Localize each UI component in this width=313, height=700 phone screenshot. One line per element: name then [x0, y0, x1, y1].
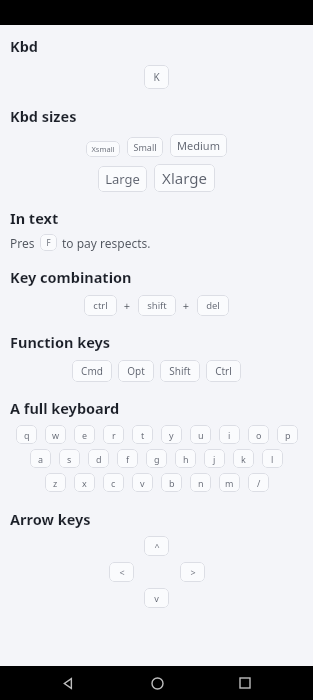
staticText: Cmd	[81, 364, 103, 378]
button[interactable]: Back	[48, 666, 88, 700]
staticText: shift	[147, 299, 167, 312]
button[interactable]: v	[144, 588, 169, 608]
staticText: Function keys	[10, 332, 111, 352]
staticText: f	[126, 453, 130, 465]
staticText: u	[198, 429, 204, 441]
staticText: Xsmall	[91, 144, 115, 154]
button[interactable]: l	[262, 449, 283, 468]
staticText: Key combination	[10, 267, 132, 287]
button[interactable]: e	[74, 425, 95, 444]
staticText: >	[190, 566, 196, 578]
staticText: h	[183, 453, 189, 465]
staticText: l	[271, 453, 274, 465]
button[interactable]: m	[219, 473, 240, 492]
button[interactable]: u	[190, 425, 211, 444]
button[interactable]: Cmd	[72, 360, 112, 382]
button[interactable]: shift	[138, 295, 176, 316]
staticText: m	[225, 477, 234, 489]
staticText: Kbd	[10, 36, 38, 56]
staticText: ctrl	[93, 299, 108, 312]
staticText: g	[154, 453, 160, 465]
staticText: Pres	[10, 235, 35, 251]
button[interactable]: ^	[144, 536, 169, 556]
button[interactable]: a	[30, 449, 51, 468]
button[interactable]: s	[59, 449, 80, 468]
staticText: ^	[154, 540, 160, 552]
staticText: Shift	[169, 364, 191, 378]
staticText: del	[206, 299, 220, 312]
button[interactable]: z	[45, 473, 66, 492]
button[interactable]: x	[74, 473, 95, 492]
staticText: Large	[105, 170, 140, 188]
button[interactable]: K	[144, 65, 169, 89]
staticText: to pay respects.	[62, 235, 151, 251]
button[interactable]: r	[103, 425, 124, 444]
staticText: v	[140, 477, 145, 489]
staticText: v	[154, 592, 159, 604]
staticText: Arrow keys	[10, 509, 91, 529]
staticText: k	[241, 453, 246, 465]
button[interactable]: w	[45, 425, 66, 444]
button[interactable]: Recents	[225, 666, 265, 700]
button[interactable]: Shift	[160, 360, 200, 382]
staticText: z	[53, 477, 58, 489]
staticText: y	[169, 429, 174, 441]
staticText: c	[111, 477, 116, 489]
button[interactable]: v	[132, 473, 153, 492]
staticText: Kbd sizes	[10, 106, 77, 126]
button[interactable]: Ctrl	[206, 360, 241, 382]
staticText: Ctrl	[215, 364, 232, 378]
button[interactable]: Xlarge	[154, 164, 215, 192]
staticText: s	[67, 453, 72, 465]
button[interactable]: Medium	[170, 134, 227, 157]
button[interactable]: n	[190, 473, 211, 492]
button[interactable]: Large	[98, 166, 147, 192]
button[interactable]: o	[248, 425, 269, 444]
staticText: x	[82, 477, 87, 489]
staticText: q	[24, 429, 30, 441]
staticText: i	[228, 429, 231, 441]
button[interactable]: p	[277, 425, 298, 444]
staticText: n	[198, 477, 204, 489]
staticText: F	[46, 237, 51, 248]
button[interactable]: Small	[127, 137, 163, 157]
button[interactable]: c	[103, 473, 124, 492]
staticText: Medium	[177, 138, 220, 153]
button[interactable]: t	[132, 425, 153, 444]
staticText: o	[256, 429, 262, 441]
button[interactable]: d	[88, 449, 109, 468]
staticText: K	[153, 70, 160, 84]
button[interactable]: Home	[137, 666, 177, 700]
button[interactable]: y	[161, 425, 182, 444]
staticText: r	[112, 429, 116, 441]
button[interactable]: Opt	[118, 360, 154, 382]
button[interactable]: <	[109, 562, 134, 582]
button[interactable]: F	[40, 234, 57, 251]
staticText: p	[285, 429, 291, 441]
button[interactable]: del	[197, 295, 229, 316]
button[interactable]: f	[117, 449, 138, 468]
staticText: Xlarge	[162, 168, 207, 188]
staticText: +	[180, 298, 193, 313]
button[interactable]: q	[16, 425, 37, 444]
button[interactable]: k	[233, 449, 254, 468]
staticText: In text	[10, 208, 59, 228]
staticText: w	[52, 429, 60, 441]
staticText: a	[38, 453, 44, 465]
staticText: /	[257, 477, 261, 489]
button[interactable]: /	[248, 473, 269, 492]
staticText: b	[169, 477, 175, 489]
button[interactable]: h	[175, 449, 196, 468]
button[interactable]: >	[180, 562, 205, 582]
staticText: Small	[133, 141, 157, 153]
staticText: Opt	[127, 364, 145, 378]
staticText: <	[119, 566, 125, 578]
staticText: d	[96, 453, 102, 465]
button[interactable]: g	[146, 449, 167, 468]
button[interactable]: ctrl	[84, 295, 117, 316]
button[interactable]: i	[219, 425, 240, 444]
button[interactable]: j	[204, 449, 225, 468]
button[interactable]: Xsmall	[86, 141, 120, 157]
staticText: e	[82, 429, 88, 441]
button[interactable]: b	[161, 473, 182, 492]
